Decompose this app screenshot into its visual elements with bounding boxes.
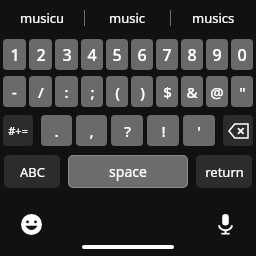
staticText: 1 <box>10 44 20 66</box>
button[interactable]: ' <box>183 115 215 146</box>
button[interactable]: 3 <box>55 39 78 70</box>
button[interactable]: 2 <box>29 39 52 70</box>
button[interactable]: musics <box>171 0 256 36</box>
staticText: ABC <box>20 163 45 181</box>
staticText: 5 <box>112 44 122 66</box>
staticText: 4 <box>87 44 97 66</box>
staticText: - <box>12 82 17 102</box>
staticText: 8 <box>187 44 197 66</box>
button[interactable]: ( <box>106 76 128 107</box>
staticText: 0 <box>237 44 247 66</box>
button[interactable]: ) <box>131 76 153 107</box>
staticText: . <box>54 121 59 141</box>
button[interactable]: . <box>41 115 72 146</box>
button[interactable]: music <box>85 0 170 36</box>
button[interactable]: 8 <box>181 39 203 70</box>
button[interactable]: $ <box>156 76 178 107</box>
staticText: 2 <box>36 44 46 66</box>
button[interactable]: & <box>181 76 203 107</box>
button[interactable]: Voice input <box>208 207 242 241</box>
button[interactable]: , <box>76 115 107 146</box>
staticText: 7 <box>162 44 172 66</box>
staticText: 6 <box>137 44 147 66</box>
button[interactable]: #+= <box>3 115 33 146</box>
staticText: : <box>64 82 69 102</box>
button[interactable]: : <box>55 76 78 107</box>
button[interactable]: space <box>68 155 188 188</box>
staticText: ! <box>161 121 166 141</box>
staticText: space <box>109 162 147 181</box>
staticText: , <box>89 121 94 141</box>
button[interactable]: 6 <box>131 39 153 70</box>
staticText: $ <box>163 82 172 102</box>
button[interactable]: @ <box>206 76 228 107</box>
staticText: music <box>109 9 146 27</box>
button[interactable]: 5 <box>106 39 128 70</box>
button[interactable]: 0 <box>231 39 253 70</box>
button[interactable]: ? <box>111 115 143 146</box>
staticText: musics <box>192 9 235 27</box>
button[interactable]: 9 <box>206 39 228 70</box>
button[interactable]: Backspace <box>223 115 253 146</box>
button[interactable]: ; <box>81 76 103 107</box>
staticText: " <box>239 82 246 102</box>
button[interactable]: / <box>29 76 52 107</box>
button[interactable]: - <box>3 76 26 107</box>
button[interactable]: 4 <box>81 39 103 70</box>
staticText: ' <box>197 121 201 141</box>
staticText: #+= <box>8 123 28 138</box>
button[interactable]: ! <box>147 115 179 146</box>
staticText: ( <box>115 82 120 102</box>
staticText: ; <box>90 82 95 102</box>
staticText: ? <box>124 121 131 141</box>
staticText: & <box>186 82 198 102</box>
button[interactable]: 7 <box>156 39 178 70</box>
button[interactable]: ABC <box>4 155 60 188</box>
staticText: / <box>38 82 44 102</box>
staticText: 3 <box>62 44 72 66</box>
staticText: ) <box>140 82 145 102</box>
staticText: return <box>205 163 244 181</box>
button[interactable]: musicu <box>0 0 84 36</box>
button[interactable]: " <box>231 76 253 107</box>
staticText: musicu <box>20 9 65 27</box>
staticText: @ <box>210 82 224 102</box>
button[interactable]: 1 <box>3 39 26 70</box>
staticText: 9 <box>212 44 222 66</box>
button[interactable]: return <box>196 155 252 188</box>
button[interactable]: Emoji <box>14 207 48 241</box>
